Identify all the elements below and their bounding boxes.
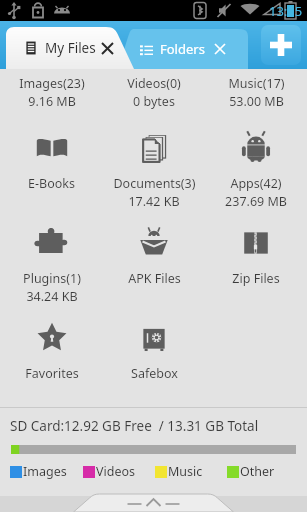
button[interactable]: Music(17) bbox=[205, 69, 307, 116]
staticText: Zip Files bbox=[232, 270, 280, 287]
staticText: 17.42 KB bbox=[128, 193, 180, 210]
button[interactable]: My Files bbox=[6, 27, 134, 69]
staticText: Folders bbox=[160, 40, 205, 58]
staticText: Images(23) bbox=[19, 75, 85, 92]
button[interactable]: Music bbox=[155, 463, 227, 480]
button[interactable]: Zip Files bbox=[205, 211, 307, 306]
staticText: 0 bytes bbox=[133, 93, 175, 110]
staticText: 53.00 MB bbox=[229, 93, 284, 110]
button[interactable]: Folders bbox=[118, 29, 248, 69]
button[interactable]: Safebox bbox=[103, 306, 205, 401]
staticText: APK Files bbox=[128, 270, 181, 287]
staticText: 9.16 MB bbox=[28, 93, 76, 110]
button[interactable]: APK Files bbox=[103, 211, 205, 306]
staticText: Videos(0) bbox=[127, 75, 181, 92]
button[interactable]: Plugins(1) bbox=[0, 211, 103, 306]
staticText: Music bbox=[168, 463, 203, 480]
button[interactable]: Favorites bbox=[0, 306, 103, 401]
button[interactable]: Apps(42) bbox=[205, 116, 307, 211]
staticText: Music(17) bbox=[228, 75, 285, 92]
button[interactable]: Other bbox=[227, 463, 299, 480]
staticText: Plugins(1) bbox=[23, 270, 81, 287]
staticText: SD Card:12.92 GB Free / 13.31 GB Total bbox=[10, 417, 259, 435]
staticText: 34.24 KB bbox=[26, 288, 78, 305]
button[interactable]: Videos(0) bbox=[103, 69, 205, 116]
staticText: Documents(3) bbox=[113, 175, 196, 192]
staticText: Apps(42) bbox=[230, 175, 282, 192]
staticText: Other bbox=[240, 463, 275, 480]
staticText: Videos bbox=[96, 463, 136, 480]
button[interactable]: Images(23) bbox=[0, 69, 103, 116]
staticText: Images bbox=[23, 463, 67, 480]
staticText: 237.69 MB bbox=[225, 193, 287, 210]
button[interactable]: E-Books bbox=[0, 116, 103, 211]
button[interactable]: Add tab bbox=[261, 25, 301, 65]
button[interactable]: Documents(3) bbox=[103, 116, 205, 211]
staticText: Safebox bbox=[131, 365, 178, 382]
staticText: Favorites bbox=[25, 365, 79, 382]
button[interactable]: Videos bbox=[83, 463, 155, 480]
staticText: E-Books bbox=[28, 175, 75, 192]
button[interactable]: Images bbox=[10, 463, 83, 480]
staticText: My Files bbox=[45, 39, 96, 57]
staticText: 13:15 bbox=[269, 2, 303, 20]
